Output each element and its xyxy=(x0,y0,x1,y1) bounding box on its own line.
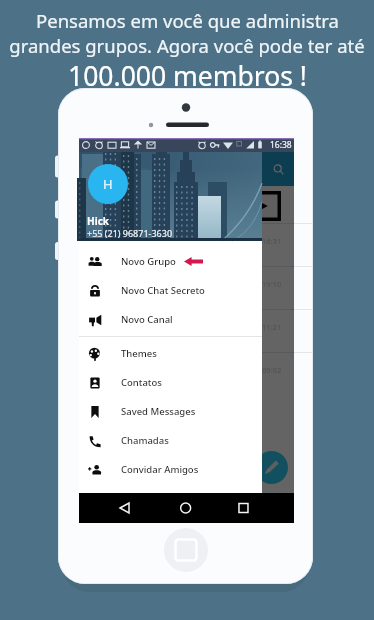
staticText: Novo Canal xyxy=(121,313,173,326)
staticText: 11:21 xyxy=(262,322,282,332)
staticText: Convidar Amigos xyxy=(121,463,199,476)
button[interactable]: Convidar Amigos xyxy=(79,455,262,484)
staticText: Contatos xyxy=(121,376,162,389)
staticText: Novo Grupo xyxy=(121,255,176,268)
button[interactable]: Compose message xyxy=(255,451,288,484)
button[interactable]: H xyxy=(88,164,128,204)
staticText: Themes xyxy=(121,347,157,360)
staticText: Hick xyxy=(87,214,109,228)
button[interactable]: Novo Chat Secreto xyxy=(79,276,262,305)
staticText: Novo Chat Secreto xyxy=(121,284,205,297)
staticText: 16:31 xyxy=(262,236,282,246)
staticText: Pensamos em você que administra xyxy=(36,8,339,33)
button[interactable]: Themes xyxy=(79,339,262,368)
staticText: 09:02 xyxy=(262,365,282,375)
staticText: 19:10 xyxy=(262,279,282,289)
staticText: Saved Messages xyxy=(121,405,196,418)
staticText: Chamadas xyxy=(121,434,169,447)
button[interactable]: Chamadas xyxy=(79,426,262,455)
staticText: grandes grupos. Agora você pode ter até xyxy=(9,33,365,58)
staticText: 100.000 membros ! xyxy=(68,58,307,94)
button[interactable]: Search xyxy=(272,163,285,176)
button[interactable]: Saved Messages xyxy=(79,397,262,426)
button[interactable]: Novo Grupo xyxy=(79,247,262,276)
staticText: 16:38 xyxy=(270,139,292,151)
button[interactable]: Contatos xyxy=(79,368,262,397)
button[interactable]: Novo Canal xyxy=(79,305,262,334)
staticText: +55 (21) 96871-3630 xyxy=(87,227,173,239)
staticText: H xyxy=(103,175,113,193)
